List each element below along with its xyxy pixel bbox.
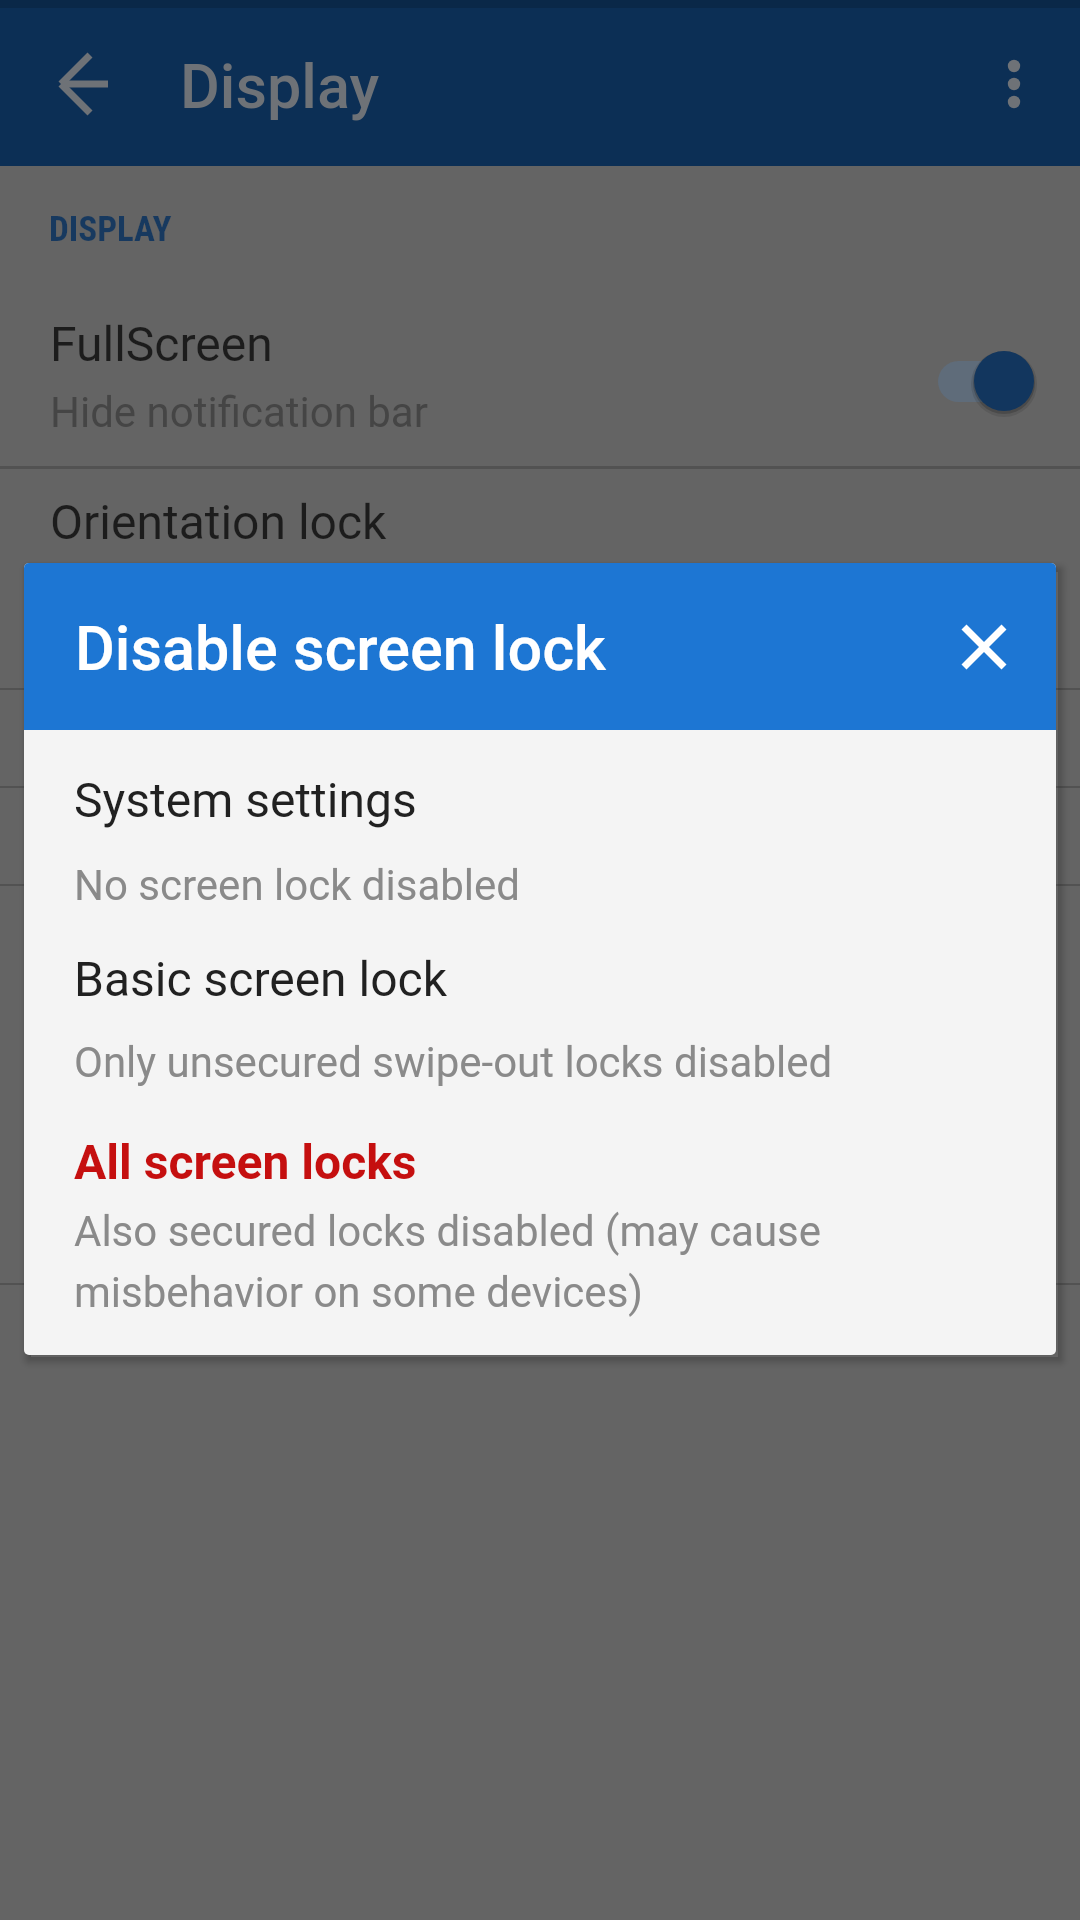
staticText: Orientation lock: [50, 494, 387, 550]
staticText: DISPLAY: [49, 209, 172, 250]
button[interactable]: [936, 599, 1032, 695]
button[interactable]: Basic screen lock: [24, 930, 1056, 1110]
staticText: Also secured locks disabled (may cause: [74, 1207, 822, 1256]
button[interactable]: FullScreen: [0, 290, 1080, 467]
staticText: Disable screen lock: [75, 613, 606, 684]
button[interactable]: [36, 36, 132, 132]
staticText: Only unsecured swipe-out locks disabled: [74, 1038, 833, 1087]
button[interactable]: System settings: [24, 750, 1056, 930]
button[interactable]: Orientation lock: [0, 469, 1080, 589]
staticText: misbehavior on some devices): [74, 1268, 643, 1317]
staticText: No screen lock disabled: [74, 861, 521, 910]
staticText: Display: [180, 51, 380, 122]
button[interactable]: [966, 18, 1062, 150]
staticText: Basic screen lock: [74, 951, 448, 1007]
button[interactable]: All screen locks: [24, 1115, 1056, 1352]
staticText: System settings: [74, 772, 417, 828]
staticText: FullScreen: [50, 316, 273, 372]
button[interactable]: [920, 331, 1060, 431]
staticText: All screen locks: [74, 1134, 417, 1190]
staticText: Hide notification bar: [50, 388, 428, 437]
